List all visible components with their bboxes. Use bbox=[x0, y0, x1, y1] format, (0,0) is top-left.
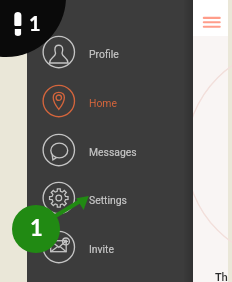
button[interactable]: Messages bbox=[27, 131, 193, 169]
staticText: 1 bbox=[29, 11, 41, 35]
staticText: 1 bbox=[30, 214, 43, 240]
button[interactable]: Profile bbox=[27, 33, 193, 71]
staticText: Invite bbox=[89, 243, 115, 255]
button[interactable]: Settings bbox=[27, 179, 193, 217]
staticText: Th bbox=[215, 270, 228, 282]
button[interactable]: Invite bbox=[27, 228, 193, 266]
staticText: Messages bbox=[89, 146, 137, 158]
button[interactable]: Home bbox=[27, 82, 193, 120]
staticText: Home bbox=[89, 97, 117, 109]
button[interactable]: 1 bbox=[12, 205, 60, 253]
button[interactable]: Open navigation menu bbox=[198, 10, 220, 32]
staticText: Settings bbox=[89, 194, 127, 206]
staticText: Profile bbox=[89, 48, 119, 60]
